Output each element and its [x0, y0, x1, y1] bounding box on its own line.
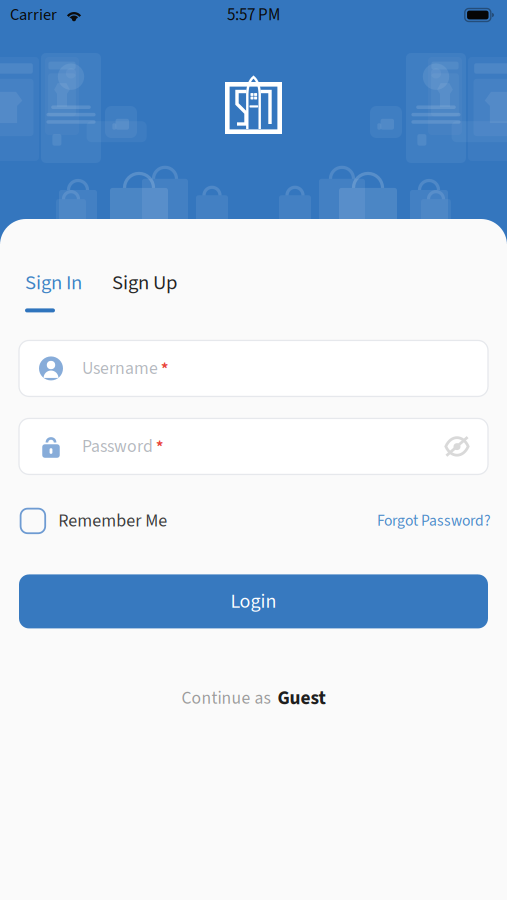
button[interactable]: Login: [19, 574, 488, 628]
staticText: 5:57 PM: [227, 3, 280, 27]
staticText: *: [156, 435, 163, 458]
staticText: Forgot Password?: [377, 510, 491, 532]
staticText: *: [161, 357, 168, 380]
staticText: Sign In: [25, 268, 82, 297]
staticText: Sign Up: [112, 268, 177, 297]
staticText: Remember Me: [58, 508, 167, 534]
staticText: Guest: [277, 684, 325, 712]
staticText: Continue as: [181, 686, 270, 711]
staticText: Carrier: [10, 3, 57, 27]
button[interactable]: Forgot Password?: [377, 510, 491, 532]
button[interactable]: Sign In: [25, 219, 82, 318]
button[interactable]: Continue as: [19, 684, 488, 712]
staticText: Password: [82, 434, 153, 459]
button[interactable]: Remember Me: [19, 508, 167, 534]
staticText: Username: [82, 356, 158, 381]
button[interactable]: Sign Up: [112, 219, 177, 318]
button[interactable]: Show password: [442, 433, 472, 460]
staticText: Login: [230, 587, 276, 616]
